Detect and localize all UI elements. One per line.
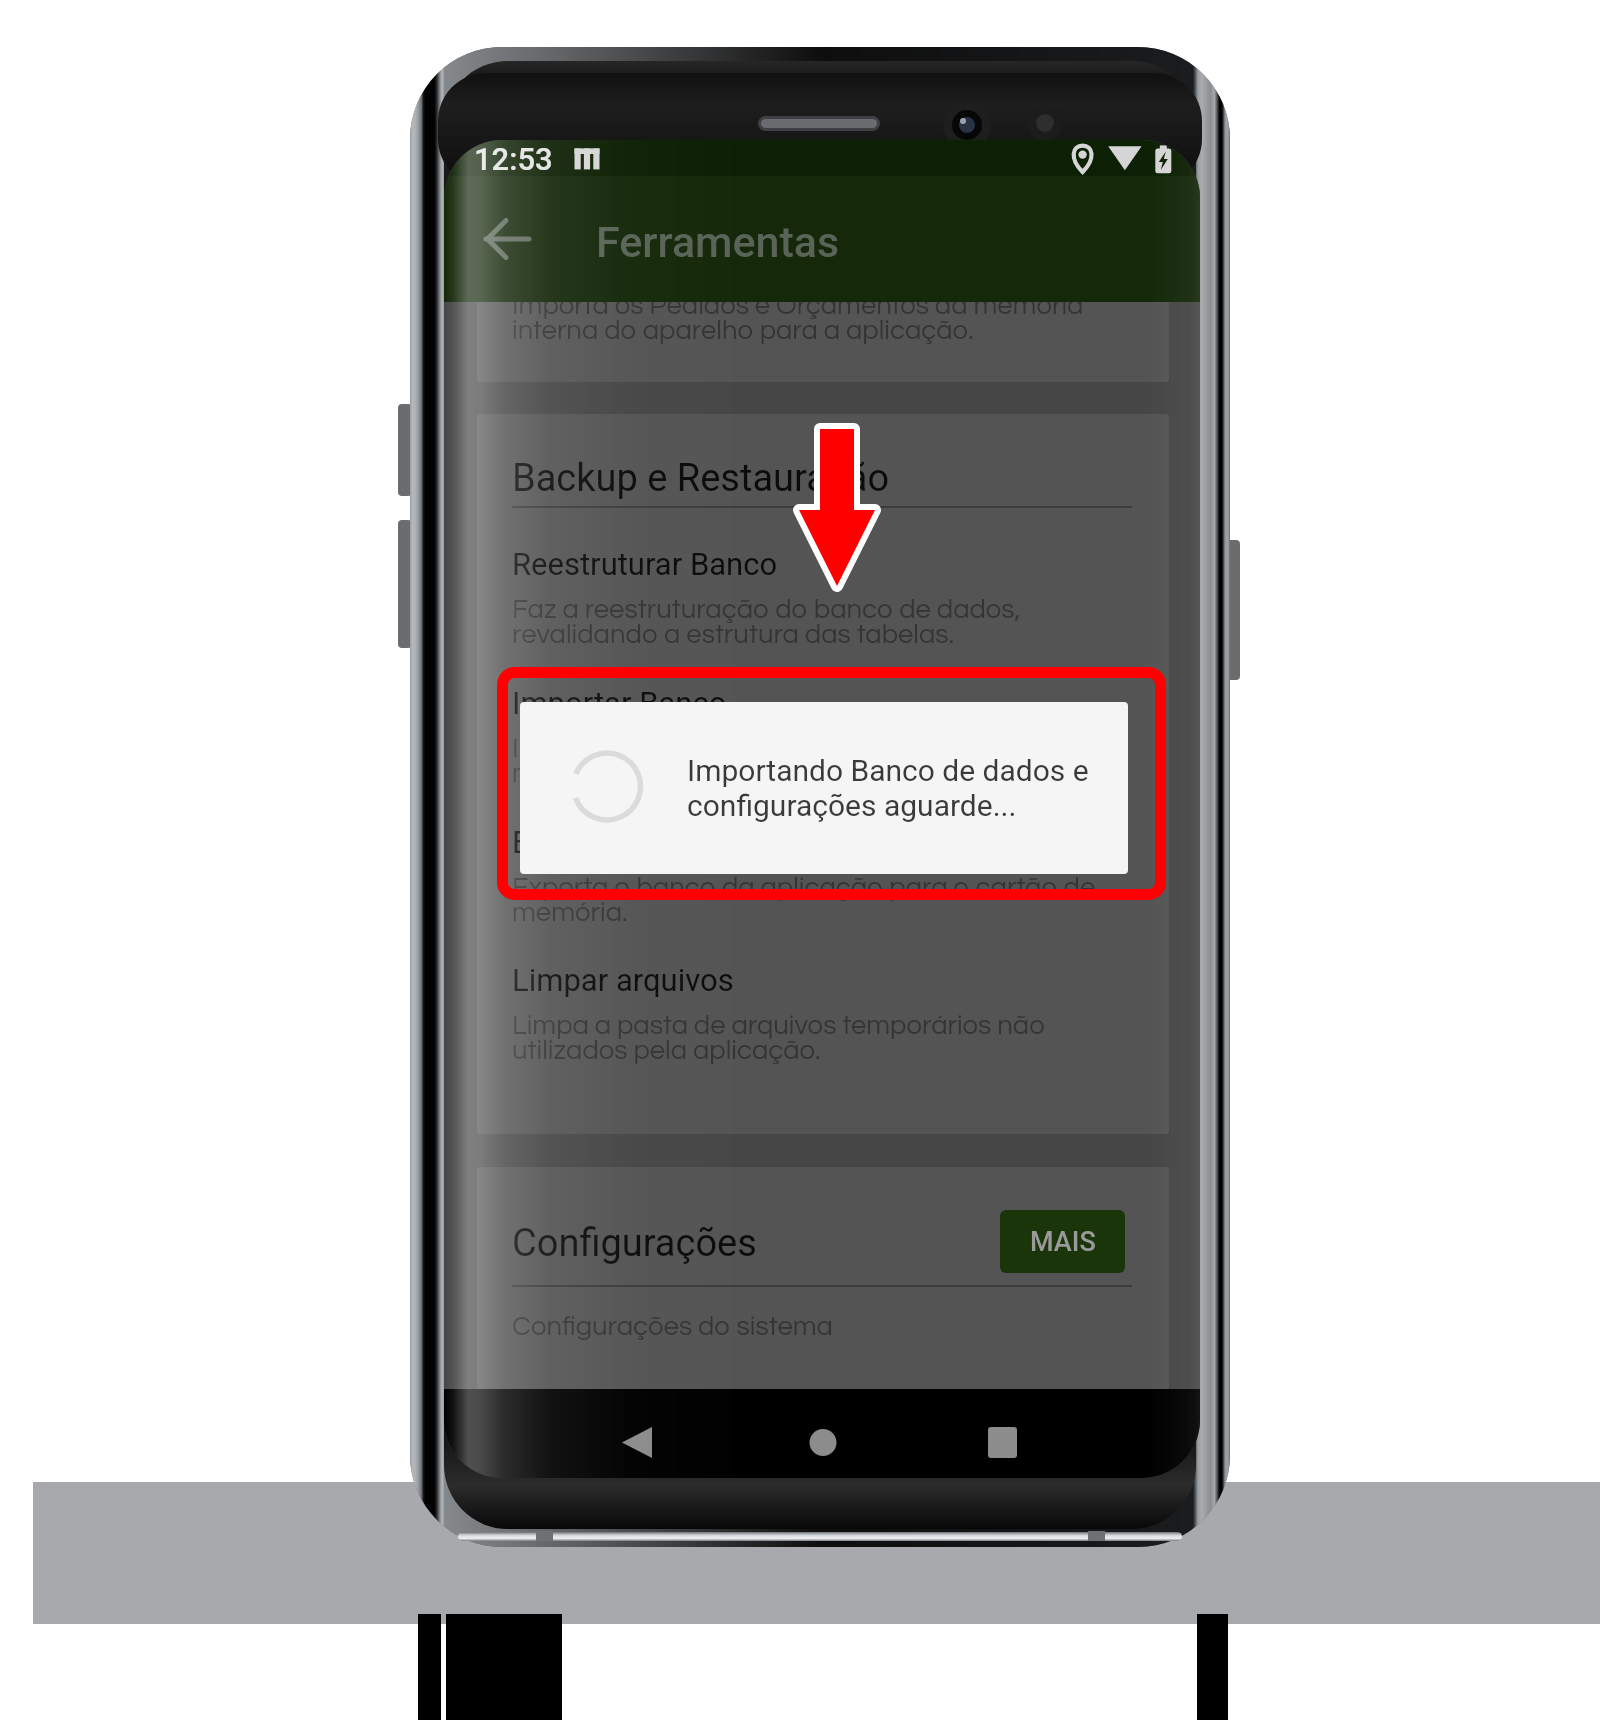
button[interactable]: Back	[482, 213, 534, 265]
staticText: MAIS	[1030, 1226, 1096, 1258]
staticText: Ferramentas	[596, 217, 840, 267]
button[interactable]: MAIS	[1000, 1210, 1125, 1273]
staticText: Configurações	[512, 1221, 757, 1266]
staticText: Importa o banco de dados do cartão de me…	[512, 734, 1002, 788]
staticText: Exporta o banco da aplicação para o cart…	[512, 873, 1096, 927]
button[interactable]: Reestruturar Banco	[444, 538, 1200, 658]
staticText: Exportar Banco	[512, 824, 724, 860]
staticText: Faz a reestruturação do banco de dados, …	[512, 595, 1021, 649]
button[interactable]: Limpar arquivos	[444, 954, 1200, 1074]
staticText: Importando Banco de dados e configuraçõe…	[687, 753, 1089, 823]
staticText: Configurações do sistema	[512, 1312, 833, 1340]
staticText: Reestruturar Banco	[512, 546, 778, 582]
button[interactable]: Importar Banco	[444, 677, 1200, 797]
staticText: 12:53	[474, 141, 553, 177]
button[interactable]: Exportar Banco	[444, 816, 1200, 936]
staticText: Limpar arquivos	[512, 962, 734, 998]
staticText: Backup e Restauração	[512, 456, 890, 501]
staticText: Limpa a pasta de arquivos temporários nã…	[512, 1011, 1045, 1065]
staticText: Importa os Pedidos e Orçamentos da memór…	[512, 291, 1084, 345]
staticText: Importar Banco	[512, 685, 727, 721]
